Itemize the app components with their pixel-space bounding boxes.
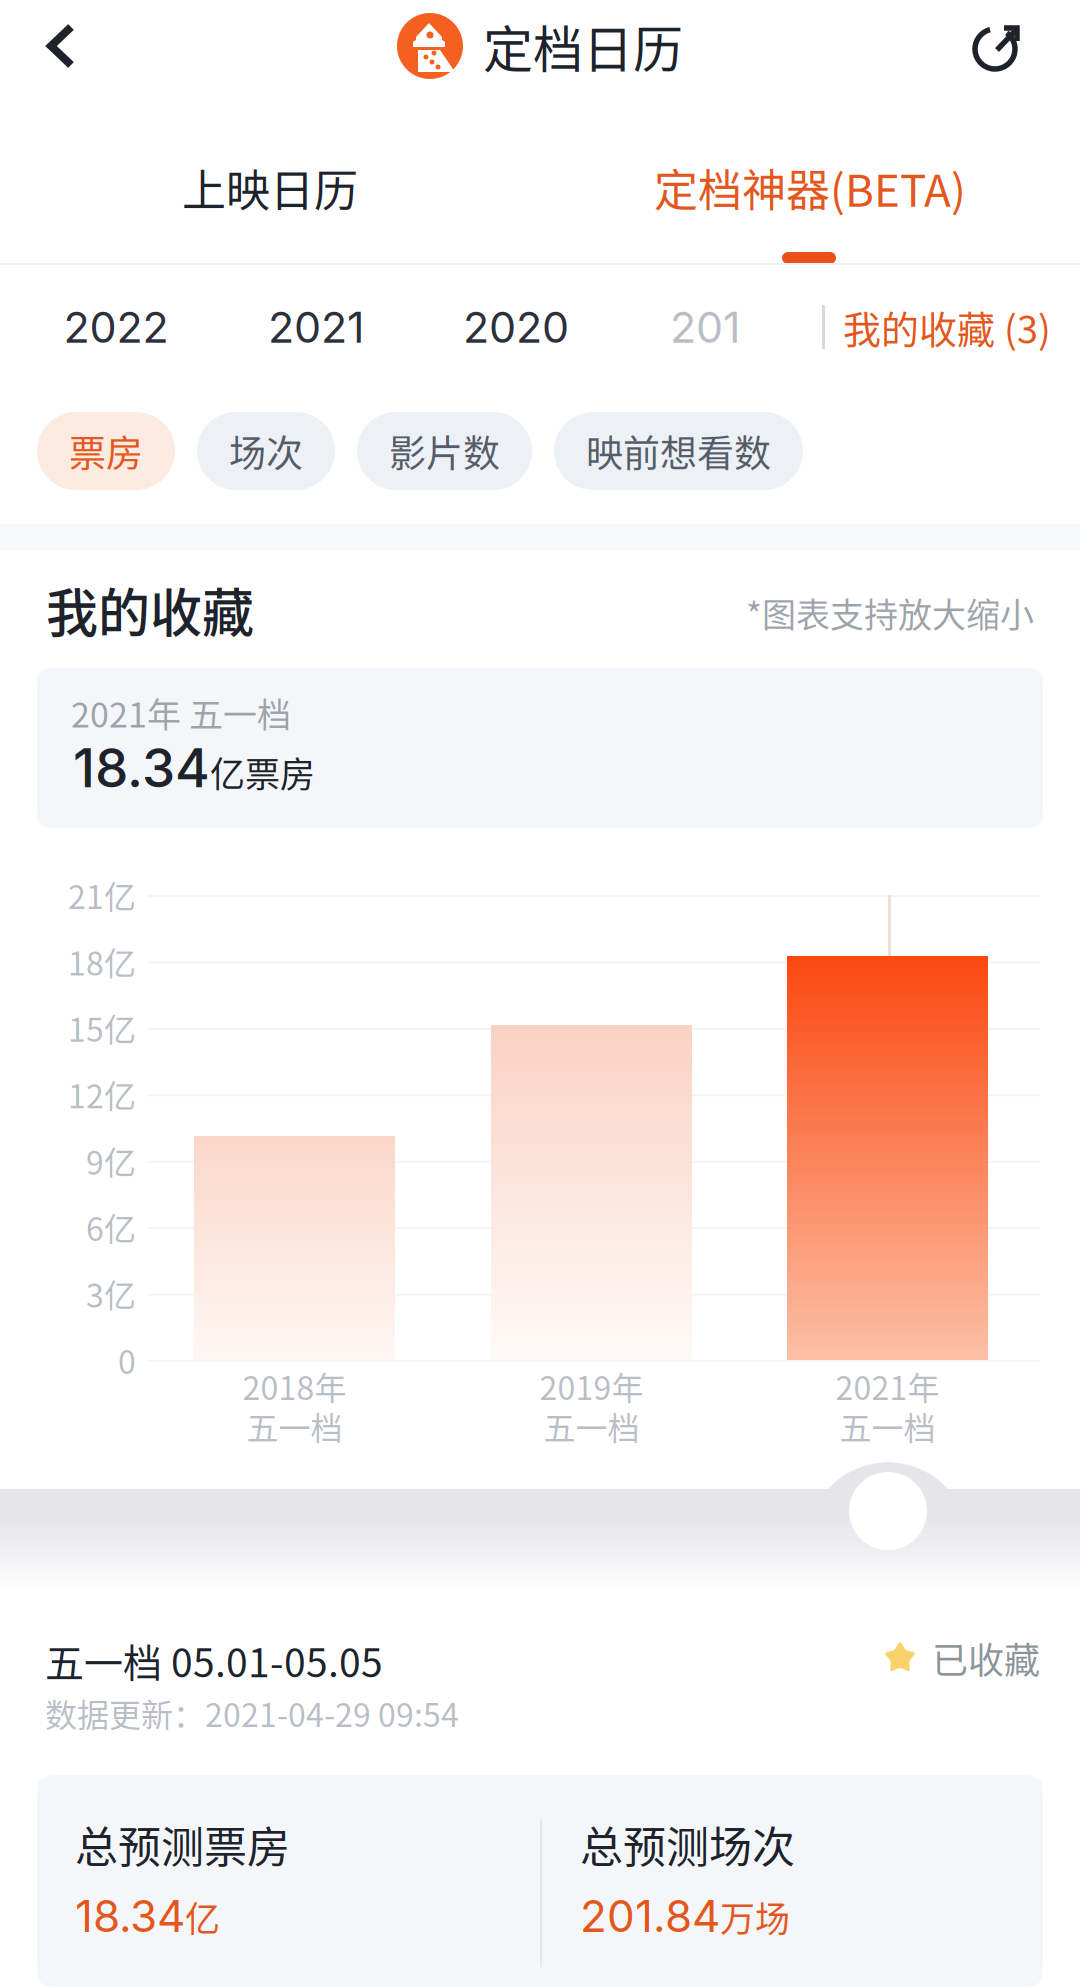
staticText: 2022: [63, 301, 168, 353]
staticText: 已收藏: [932, 1632, 1040, 1684]
staticText: 0: [118, 1337, 136, 1383]
staticText: 18.34: [73, 736, 210, 800]
staticText: 五一档: [839, 1403, 935, 1449]
staticText: *图表支持放大缩小: [746, 588, 1034, 637]
staticText: 定档神器(BETA): [654, 156, 966, 219]
staticText: 万场: [720, 1891, 790, 1942]
staticText: 2021: [268, 301, 364, 353]
staticText: 12亿: [68, 1071, 136, 1117]
staticText: 我的收藏: [46, 572, 254, 647]
staticText: 五一档 05.01-05.05: [45, 1632, 383, 1688]
staticText: 票房: [69, 424, 143, 478]
staticText: 18.34: [75, 1889, 185, 1942]
staticText: 五一档: [543, 1403, 639, 1449]
staticText: 18亿: [68, 938, 136, 985]
button[interactable]: Back: [6, 0, 116, 92]
staticText: 我的收藏 (3): [843, 299, 1051, 354]
staticText: 总预测场次: [580, 1813, 795, 1875]
staticText: 2019年: [539, 1363, 643, 1409]
staticText: 15亿: [68, 1005, 136, 1051]
staticText: 2018年: [242, 1363, 346, 1409]
staticText: 3亿: [86, 1270, 136, 1317]
staticText: 亿票房: [210, 747, 315, 797]
staticText: 9亿: [86, 1138, 136, 1184]
button[interactable]: 影片数: [357, 412, 532, 490]
staticText: 五一档: [246, 1403, 342, 1449]
button[interactable]: 票房: [37, 412, 175, 490]
button[interactable]: 场次: [197, 412, 335, 490]
staticText: 2020: [463, 301, 569, 353]
button[interactable]: Share: [950, 0, 1046, 92]
button[interactable]: 2020: [436, 265, 596, 389]
staticText: 上映日历: [182, 156, 358, 219]
staticText: 总预测票房: [75, 1813, 290, 1875]
staticText: 2021年: [835, 1363, 939, 1409]
staticText: 6亿: [86, 1204, 136, 1250]
staticText: 场次: [229, 424, 303, 478]
button[interactable]: 201: [670, 265, 790, 389]
staticText: 数据更新：2021-04-29 09:54: [45, 1690, 459, 1736]
staticText: 映前想看数: [586, 424, 771, 478]
staticText: 定档日历: [483, 10, 683, 82]
staticText: 21亿: [68, 872, 136, 918]
staticText: 亿: [185, 1891, 220, 1942]
button[interactable]: 上映日历: [0, 110, 540, 265]
button[interactable]: 定档神器(BETA): [540, 110, 1080, 265]
button[interactable]: 2021: [236, 265, 396, 389]
button[interactable]: 我的收藏 (3): [843, 265, 1058, 389]
button[interactable]: 映前想看数: [554, 412, 803, 490]
staticText: 201.84: [580, 1889, 720, 1942]
staticText: 影片数: [389, 424, 500, 478]
button[interactable]: 已收藏: [880, 1630, 1040, 1686]
staticText: 201: [670, 301, 740, 353]
button[interactable]: 2022: [36, 265, 196, 389]
staticText: 2021年 五一档: [71, 688, 291, 737]
